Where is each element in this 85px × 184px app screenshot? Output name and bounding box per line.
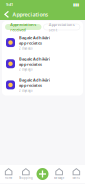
staticText: 2 days ago [19,89,33,92]
staticText: Appreciations [12,11,48,18]
button[interactable]: Add [35,167,49,181]
staticText: ▮▮▮ [73,2,79,7]
staticText: Shopping [19,176,33,180]
button[interactable]: Message [50,168,68,180]
button[interactable]: Bagale Adhikāri appreciates [2,53,83,74]
button[interactable]: Appreciations sent [43,24,80,30]
button[interactable]: Shopping [17,168,34,180]
button[interactable]: Back [4,11,9,18]
staticText: Appreciations received [10,22,36,32]
button[interactable]: Menu [68,168,85,180]
button[interactable]: Bagale Adhikāri appreciates [2,74,83,95]
button[interactable]: Appreciations received [5,24,41,30]
button[interactable]: Home [0,168,17,180]
staticText: 2 days ago [19,47,33,50]
button[interactable]: Bagale Adhikāri appreciates [2,32,83,53]
staticText: Appreciations sent [49,22,75,32]
staticText: Bagale Adhikāri appreciates [19,35,50,46]
staticText: 2 days ago [19,68,33,71]
staticText: Home [5,176,13,180]
staticText: Bagale Adhikāri appreciates [19,77,50,88]
staticText: Message [54,176,65,180]
staticText: Bagale Adhikāri appreciates [19,56,50,67]
staticText: 9:41 [6,2,13,7]
staticText: Menu [72,176,80,180]
